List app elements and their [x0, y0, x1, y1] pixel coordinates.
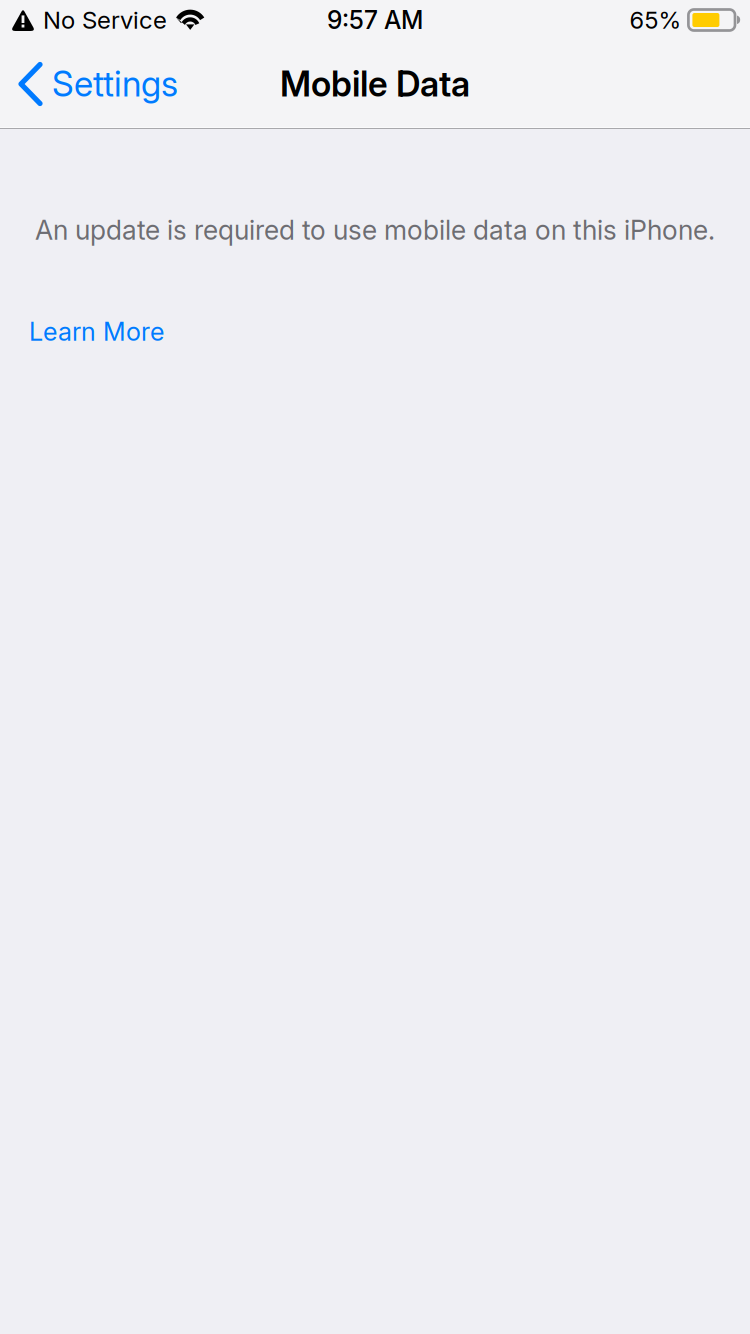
staticText: An update is required to use mobile data…	[35, 214, 715, 246]
staticText: 65%	[629, 6, 681, 34]
staticText: Learn More	[29, 316, 164, 347]
button[interactable]: Learn More	[0, 246, 184, 357]
staticText: 9:57 AM	[327, 5, 423, 35]
staticText: No Service	[43, 5, 167, 35]
staticText: Settings	[52, 63, 178, 105]
staticText: Mobile Data	[280, 63, 470, 105]
button[interactable]: Settings	[0, 40, 190, 128]
